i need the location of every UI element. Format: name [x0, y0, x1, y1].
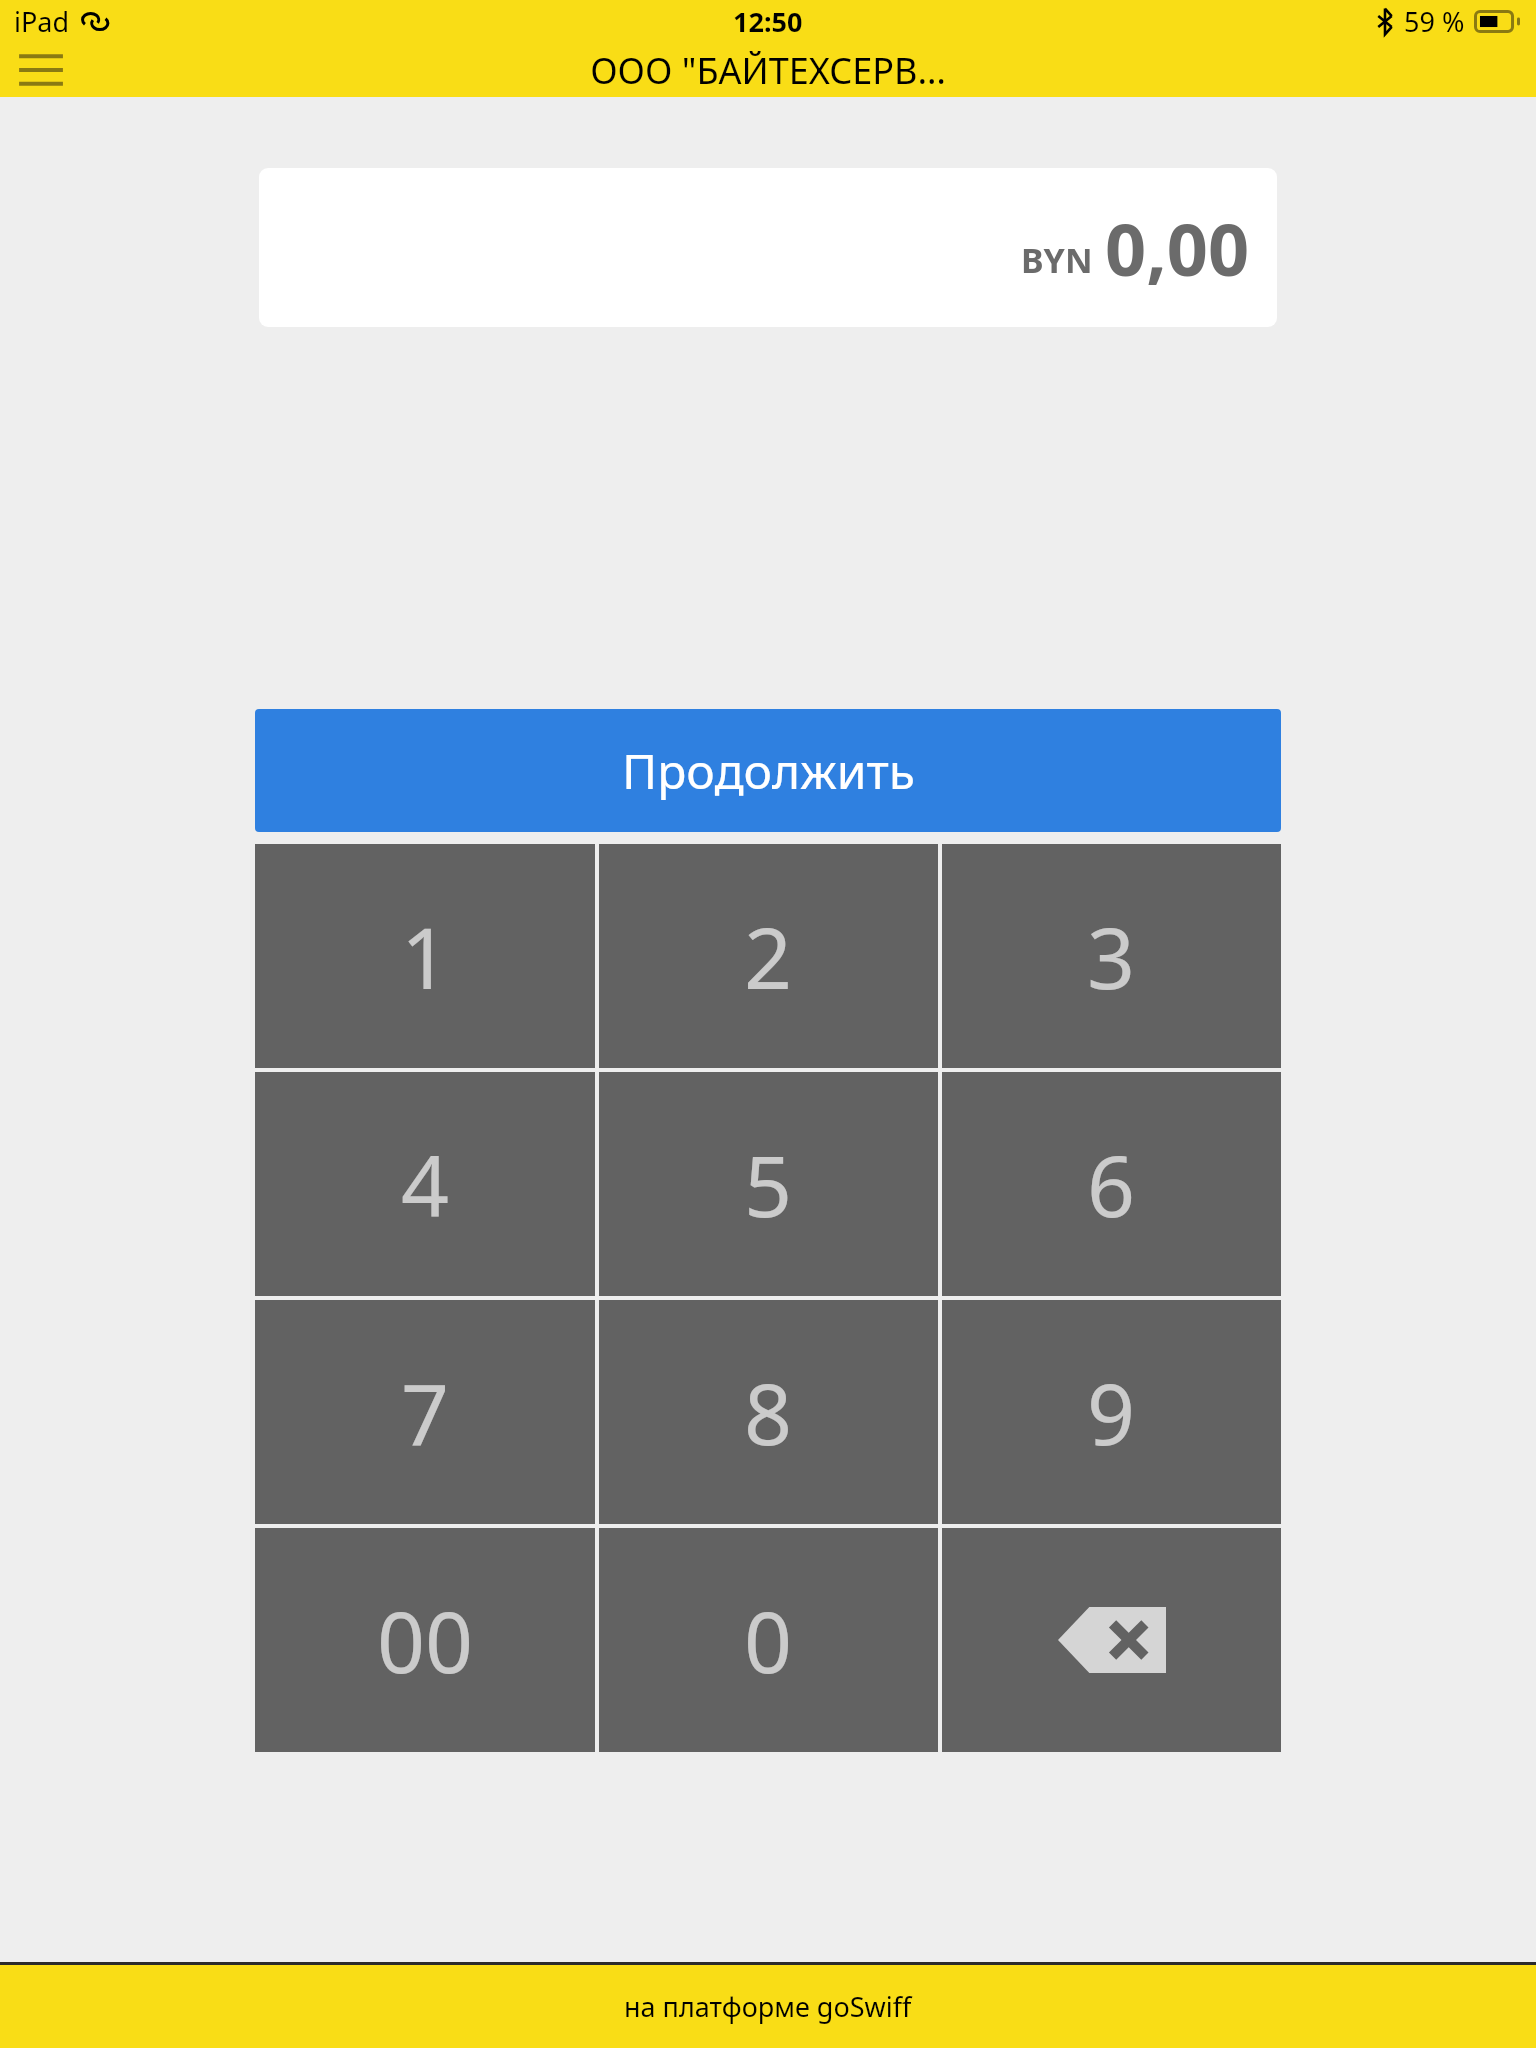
staticText: 59 % [1404, 3, 1465, 40]
button[interactable]: 6 [942, 1072, 1281, 1296]
button[interactable]: 5 [599, 1072, 938, 1296]
button[interactable]: 00 [255, 1528, 595, 1752]
staticText: 5 [744, 1127, 793, 1241]
staticText: 00 [377, 1583, 474, 1697]
staticText: 4 [401, 1127, 450, 1241]
button[interactable]: 9 [942, 1300, 1281, 1524]
button[interactable]: 0 [599, 1528, 938, 1752]
staticText: 7 [401, 1355, 450, 1469]
staticText: 0,00 [1105, 199, 1250, 297]
staticText: Продолжить [622, 738, 915, 803]
staticText: 3 [1087, 899, 1136, 1013]
staticText: 6 [1087, 1127, 1136, 1241]
button[interactable]: Open navigation menu [6, 43, 76, 97]
button[interactable]: Продолжить [255, 709, 1281, 832]
staticText: 12:50 [733, 3, 803, 40]
button[interactable]: 4 [255, 1072, 595, 1296]
button[interactable]: 3 [942, 844, 1281, 1068]
button[interactable]: на платформе goSwiff [0, 1965, 1536, 2048]
button[interactable]: 8 [599, 1300, 938, 1524]
staticText: на платформе goSwiff [624, 1988, 912, 2025]
staticText: 8 [744, 1355, 793, 1469]
staticText: 0 [744, 1583, 793, 1697]
staticText: 2 [744, 899, 793, 1013]
button[interactable]: 2 [599, 844, 938, 1068]
button[interactable]: Backspace [942, 1528, 1281, 1752]
button[interactable]: 1 [255, 844, 595, 1068]
staticText: BYN [1021, 237, 1093, 283]
staticText: ООО "БАЙТЕХСЕРВ… [590, 46, 946, 95]
button[interactable]: BYN [259, 168, 1277, 327]
staticText: iPad [14, 3, 70, 40]
staticText: 1 [401, 899, 450, 1013]
staticText: 9 [1087, 1355, 1136, 1469]
button[interactable]: 7 [255, 1300, 595, 1524]
